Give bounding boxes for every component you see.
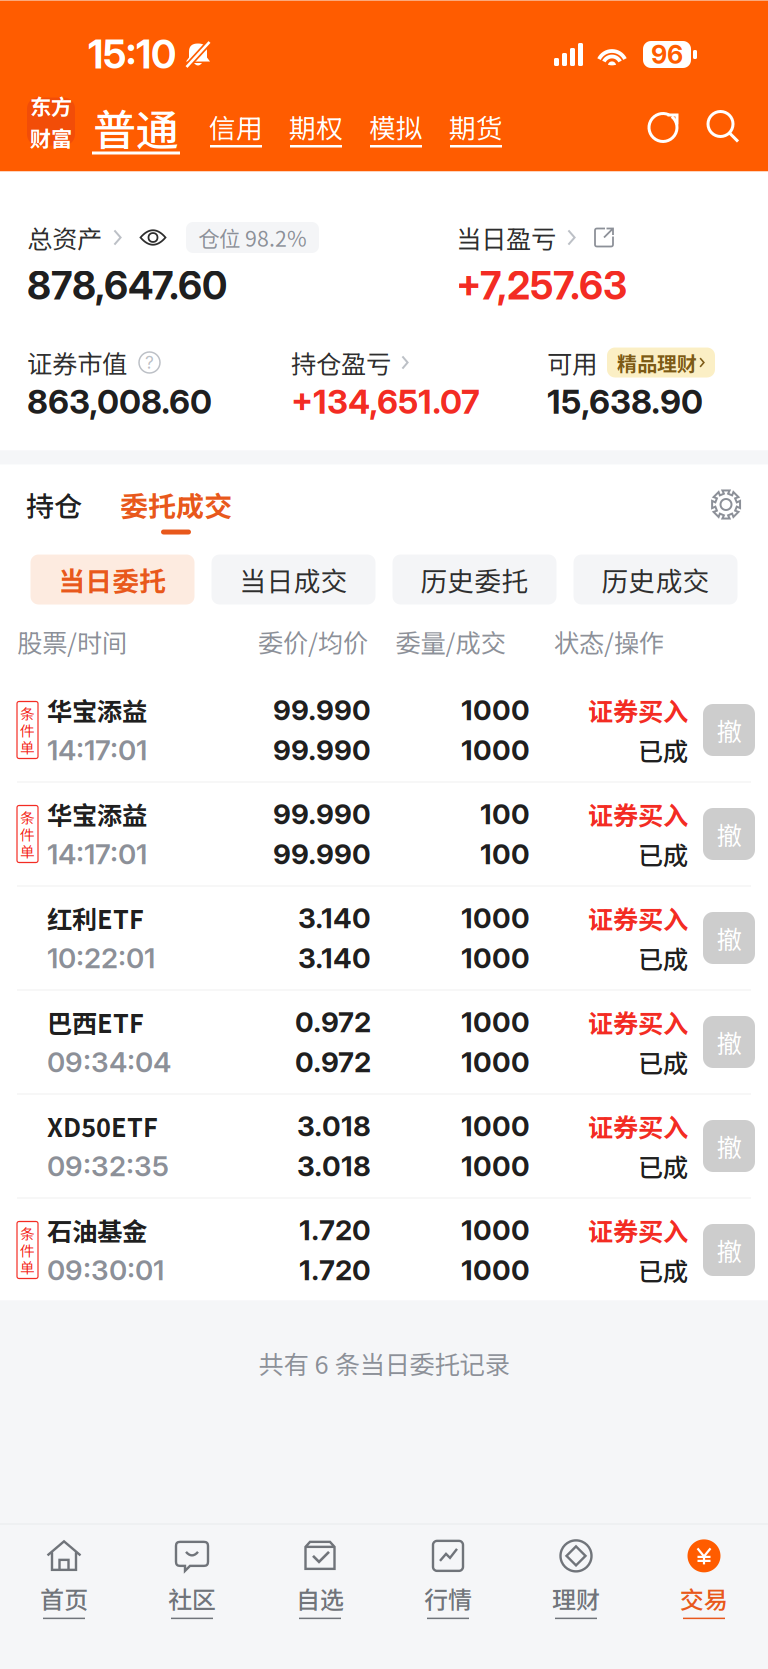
staticText: 状态/操作 xyxy=(554,623,664,660)
button[interactable]: 首页 xyxy=(0,1529,128,1629)
staticText: 09:34:04 xyxy=(47,1045,171,1079)
button[interactable]: 持仓 xyxy=(26,484,82,524)
button[interactable]: 委托成交 xyxy=(120,484,232,534)
staticText: 14:17:01 xyxy=(47,733,147,767)
staticText: 863,008.60 xyxy=(27,381,212,422)
staticText: 条 xyxy=(20,702,35,724)
staticText: 已成 xyxy=(638,940,688,976)
button[interactable]: 历史委托 xyxy=(392,554,556,604)
staticText: 已成 xyxy=(638,1148,688,1184)
staticText: 社区 xyxy=(168,1581,216,1616)
staticText: 证券买入 xyxy=(588,796,688,832)
staticText: 仓位 98.2% xyxy=(198,222,307,253)
button[interactable]: 自选 xyxy=(256,1529,384,1629)
staticText: 99.990 xyxy=(273,733,371,767)
staticText: 证券买入 xyxy=(588,1004,688,1040)
staticText: 件 xyxy=(20,1239,35,1261)
button[interactable]: 设置 xyxy=(710,488,742,520)
staticText: 3.018 xyxy=(297,1149,371,1183)
staticText: XD50ETF xyxy=(47,1108,158,1144)
staticText: 总资产 xyxy=(27,219,102,256)
staticText: 单 xyxy=(20,840,35,862)
staticText: 期权 xyxy=(289,107,343,146)
staticText: 1000 xyxy=(461,1213,530,1247)
staticText: 精品理财 xyxy=(617,348,697,377)
staticText: 模拟 xyxy=(369,107,423,146)
button[interactable]: 撤 xyxy=(703,1016,755,1068)
button[interactable]: 交易 xyxy=(640,1529,768,1629)
staticText: 期货 xyxy=(449,107,503,146)
button[interactable]: 撤 xyxy=(703,1224,755,1276)
button[interactable]: 社区 xyxy=(128,1529,256,1629)
staticText: 99.990 xyxy=(273,797,371,831)
staticText: 1000 xyxy=(461,1109,530,1143)
button[interactable]: 当日成交 xyxy=(211,554,375,604)
staticText: 3.018 xyxy=(297,1109,371,1143)
staticText: 3.140 xyxy=(298,901,371,935)
staticText: 件 xyxy=(20,823,35,845)
staticText: 委价/均价 xyxy=(258,623,368,660)
staticText: 件 xyxy=(20,719,35,741)
button[interactable]: 当日委托 xyxy=(30,554,194,604)
button[interactable]: 刷新 xyxy=(646,108,684,146)
staticText: 证券买入 xyxy=(588,1212,688,1248)
button[interactable]: 撤 xyxy=(703,704,755,756)
staticText: 委托成交 xyxy=(120,484,232,525)
staticText: 巴西ETF xyxy=(47,1004,144,1040)
staticText: 1000 xyxy=(461,1045,530,1079)
button[interactable]: 撤 xyxy=(703,912,755,964)
button[interactable]: 期权 xyxy=(289,113,343,154)
button[interactable]: 模拟 xyxy=(369,113,423,154)
staticText: 理财 xyxy=(552,1581,600,1616)
button[interactable]: 撤 xyxy=(703,1120,755,1172)
staticText: 1000 xyxy=(461,1005,530,1039)
staticText: 96 xyxy=(651,39,683,70)
staticText: 行情 xyxy=(424,1581,472,1616)
staticText: 共有 6 条当日委托记录 xyxy=(258,1344,509,1381)
staticText: 14:17:01 xyxy=(47,837,147,871)
staticText: 99.990 xyxy=(273,693,371,727)
staticText: 自选 xyxy=(296,1581,344,1616)
staticText: 证券买入 xyxy=(588,900,688,936)
staticText: +7,257.63 xyxy=(456,262,627,309)
button[interactable]: 行情 xyxy=(384,1529,512,1629)
button[interactable]: 理财 xyxy=(512,1529,640,1629)
staticText: 东方 xyxy=(30,90,72,121)
staticText: 持仓 xyxy=(26,484,82,525)
staticText: 红利ETF xyxy=(47,900,144,936)
staticText: 当日盈亏 xyxy=(456,219,556,256)
staticText: 1000 xyxy=(461,901,530,935)
staticText: 15,638.90 xyxy=(547,381,703,422)
button[interactable]: 期货 xyxy=(449,113,503,154)
button[interactable]: 证券市值 xyxy=(27,348,291,417)
button[interactable]: 总资产 xyxy=(27,221,319,304)
staticText: 09:30:01 xyxy=(47,1253,164,1287)
staticText: 条 xyxy=(20,1222,35,1244)
button[interactable]: 可用 xyxy=(547,348,715,417)
staticText: 1000 xyxy=(461,1253,530,1287)
staticText: 1.720 xyxy=(299,1253,371,1287)
button[interactable]: 当日盈亏 xyxy=(456,221,741,304)
staticText: 09:32:35 xyxy=(47,1149,169,1183)
staticText: 单 xyxy=(20,736,35,758)
button[interactable]: 历史成交 xyxy=(573,554,737,604)
staticText: 股票/时间 xyxy=(17,623,127,660)
button[interactable]: 搜索 xyxy=(705,108,743,146)
staticText: 历史委托 xyxy=(420,560,528,599)
button[interactable]: 普通 xyxy=(92,106,180,154)
staticText: 历史成交 xyxy=(601,560,709,599)
staticText: 已成 xyxy=(638,1044,688,1080)
button[interactable]: 东方财富 xyxy=(27,97,75,145)
staticText: 15:10 xyxy=(88,31,176,78)
staticText: 证券买入 xyxy=(588,692,688,728)
button[interactable]: 信用 xyxy=(209,113,263,154)
staticText: 持仓盈亏 xyxy=(291,344,391,381)
button[interactable]: 持仓盈亏 xyxy=(291,348,547,417)
staticText: 878,647.60 xyxy=(27,262,227,309)
staticText: 普通 xyxy=(93,97,179,158)
button[interactable]: 撤 xyxy=(703,808,755,860)
staticText: 撤 xyxy=(716,1128,741,1164)
staticText: 信用 xyxy=(209,107,263,146)
staticText: 交易 xyxy=(680,1581,728,1616)
staticText: 1000 xyxy=(461,733,530,767)
